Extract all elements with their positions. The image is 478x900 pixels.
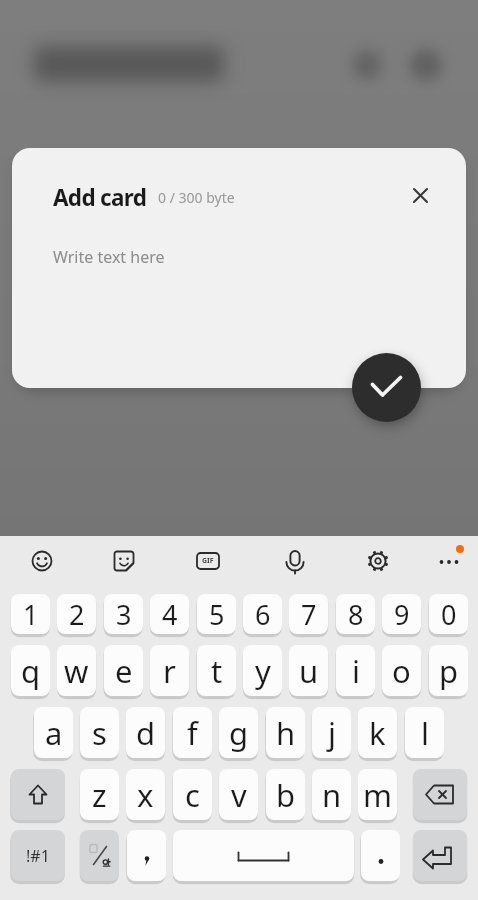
button[interactable]: 2 [57,594,96,634]
staticText: 2 [69,596,85,633]
button[interactable]: k [358,707,397,758]
staticText: u [299,650,319,692]
button[interactable]: h [266,707,305,758]
staticText: q [21,650,41,692]
staticText: z [92,774,107,816]
button[interactable]: a [34,707,73,758]
staticText: GIF [202,556,214,566]
staticText: e [115,650,133,692]
button[interactable]: i [336,645,375,696]
button[interactable] [399,174,442,217]
button[interactable]: 4 [150,594,189,634]
button[interactable]: x [126,769,165,820]
button[interactable]: 7 [289,594,328,634]
staticText: 3 [116,596,132,633]
button[interactable] [20,539,64,583]
staticText: Write text here [53,246,165,268]
button[interactable] [413,769,467,820]
button[interactable]: p [429,645,468,696]
button[interactable]: 5 [197,594,236,634]
button[interactable]: v [219,769,258,820]
staticText: 6 [255,596,271,633]
staticText: 9 [394,596,410,633]
staticText: 8 [348,596,364,633]
button[interactable]: c [173,769,212,820]
button[interactable]: t [197,645,236,696]
staticText: Add card [53,182,147,213]
button[interactable]: !#1 [11,830,65,881]
button[interactable]: 3 [104,594,143,634]
button[interactable]: u [289,645,328,696]
button[interactable]: f [173,707,212,758]
button[interactable] [80,830,119,881]
button[interactable]: Write text here [50,236,430,346]
button[interactable]: y [243,645,282,696]
button[interactable] [186,539,230,583]
button[interactable]: r [150,645,189,696]
button[interactable]: b [266,769,305,820]
staticText: m [363,774,392,816]
button[interactable]: n [312,769,351,820]
button[interactable] [352,353,421,422]
button[interactable]: d [126,707,165,758]
staticText: 0 [441,596,457,633]
staticText: 5 [209,596,225,633]
button[interactable] [356,539,400,583]
staticText: c [185,774,200,816]
staticText: l [421,712,429,754]
staticText: x [137,774,154,816]
staticText: s [92,712,107,754]
staticText: g [229,712,249,754]
button[interactable] [11,769,65,820]
button[interactable]: q [11,645,50,696]
staticText: h [276,712,296,754]
button[interactable] [102,539,146,583]
staticText: b [276,774,296,816]
staticText: n [322,774,342,816]
staticText: i [352,650,360,692]
staticText: d [136,712,156,754]
button[interactable]: l [405,707,444,758]
button[interactable]: g [219,707,258,758]
button[interactable] [361,830,400,881]
button[interactable]: s [80,707,119,758]
button[interactable]: w [57,645,96,696]
staticText: 7 [301,596,317,633]
staticText: p [439,650,459,692]
staticText: 1 [23,596,39,633]
staticText: t [211,650,223,692]
staticText: k [369,712,386,754]
button[interactable]: e [104,645,143,696]
button[interactable] [427,540,471,584]
staticText: f [187,712,198,754]
button[interactable]: 0 [429,594,468,634]
staticText: !#1 [26,845,50,867]
button[interactable]: j [312,707,351,758]
button[interactable]: o [382,645,421,696]
staticText: 0 / 300 byte [158,188,235,207]
staticText: w [64,650,89,692]
button[interactable] [413,830,467,881]
button[interactable]: 9 [382,594,421,634]
button[interactable]: m [358,769,397,820]
staticText: r [163,650,176,692]
button[interactable]: z [80,769,119,820]
button[interactable] [127,830,166,881]
button[interactable]: 8 [336,594,375,634]
staticText: o [392,650,411,692]
staticText: v [231,774,247,816]
staticText: y [255,650,271,692]
staticText: a [45,712,63,754]
button[interactable]: 1 [11,594,50,634]
staticText: 4 [162,596,178,633]
button[interactable]: 6 [243,594,282,634]
button[interactable] [273,539,317,583]
button[interactable] [173,830,354,881]
staticText: j [328,712,336,754]
